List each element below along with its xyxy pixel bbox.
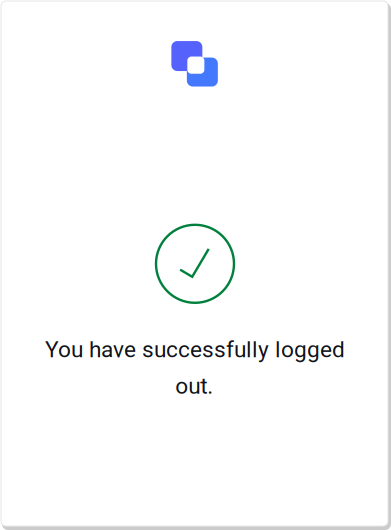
staticText: You have successfully logged xyxy=(45,336,345,363)
staticText: out. xyxy=(175,373,213,399)
